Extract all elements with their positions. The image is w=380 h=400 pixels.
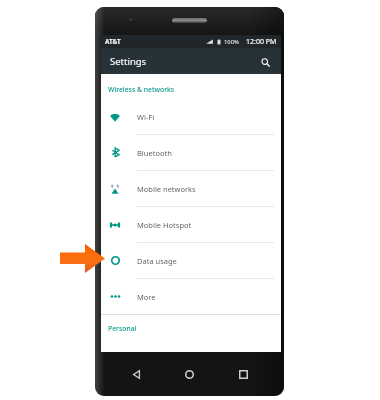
staticText: Bluetooth	[137, 148, 172, 158]
staticText: Data usage	[137, 256, 177, 266]
staticText: 100%	[224, 38, 239, 46]
staticText: Mobile Hotspot	[137, 220, 192, 230]
staticText: AT&T	[105, 37, 121, 46]
staticText: Wi-Fi	[137, 112, 155, 122]
staticText: More	[137, 292, 156, 302]
button[interactable]: Mobile networks	[101, 171, 281, 206]
staticText: Wireless & networks	[108, 85, 175, 94]
button[interactable]: Search	[257, 53, 273, 69]
staticText: 12:00 PM	[246, 37, 277, 47]
button[interactable]: Mobile Hotspot	[101, 207, 281, 242]
staticText: Settings	[110, 55, 147, 68]
button[interactable]: More	[101, 279, 281, 314]
button[interactable]: Data usage	[101, 243, 281, 278]
staticText: Personal	[108, 324, 137, 333]
button[interactable]: Wi-Fi	[101, 99, 281, 134]
button[interactable]: Recent apps	[234, 365, 252, 383]
button[interactable]: Home	[180, 365, 198, 383]
button[interactable]: Back	[127, 365, 145, 383]
staticText: Mobile networks	[137, 184, 196, 194]
button[interactable]: Bluetooth	[101, 135, 281, 170]
